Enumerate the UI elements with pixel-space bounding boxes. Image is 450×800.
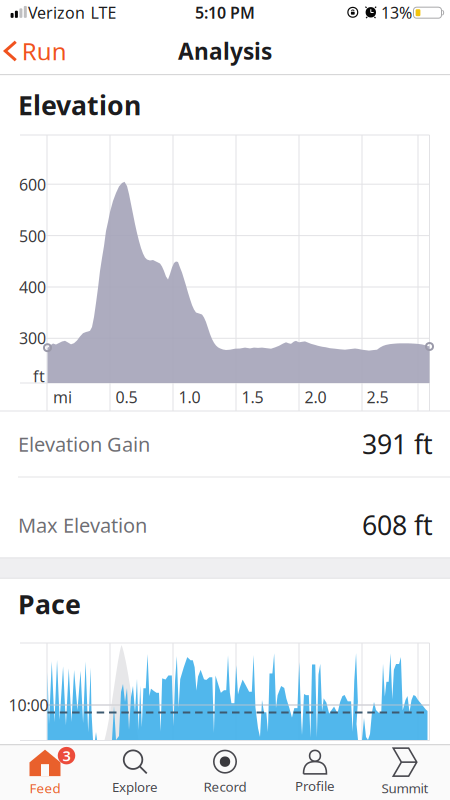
staticText: 400 (19, 276, 46, 298)
button[interactable]: 3 (0, 745, 90, 800)
staticText: 2.0 (304, 386, 326, 408)
staticText: 1.0 (178, 386, 200, 408)
staticText: 2.5 (366, 386, 388, 408)
staticText: 300 (19, 327, 46, 349)
staticText: 1.5 (241, 386, 263, 408)
staticText: Record (203, 778, 246, 795)
button[interactable]: Profile (270, 745, 360, 800)
staticText: 500 (19, 225, 46, 247)
staticText: 600 (19, 174, 46, 195)
staticText: Profile (295, 777, 335, 795)
staticText: 13% (381, 2, 412, 23)
staticText: Feed (29, 779, 60, 797)
staticText: Verizon (28, 2, 85, 23)
staticText: Summit (381, 779, 428, 797)
staticText: Run (22, 35, 67, 67)
button[interactable]: Explore (90, 745, 180, 800)
staticText: Explore (112, 778, 158, 796)
staticText: 0.5 (115, 386, 137, 408)
staticText: mi (53, 386, 72, 408)
staticText: 608 ft (362, 507, 433, 543)
button[interactable]: Summit (360, 745, 450, 800)
button[interactable]: Run (5, 35, 67, 67)
staticText: Elevation Gain (18, 431, 150, 457)
staticText: 391 ft (362, 426, 433, 462)
staticText: 10:00 (8, 694, 48, 716)
staticText: 3 (62, 746, 70, 765)
staticText: Analysis (178, 36, 272, 66)
staticText: 5:10 PM (195, 2, 255, 23)
staticText: LTE (90, 2, 116, 23)
staticText: Pace (18, 586, 81, 622)
staticText: ft (33, 365, 45, 387)
staticText: Max Elevation (18, 512, 147, 538)
button[interactable]: Record (180, 745, 270, 800)
staticText: Elevation (18, 87, 141, 123)
